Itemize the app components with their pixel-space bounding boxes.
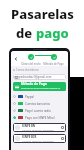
button[interactable]: Back <box>13 56 19 62</box>
staticText: Correo electrónico <box>16 68 39 72</box>
staticText: Pago/ cuenta radio <box>25 109 51 113</box>
button[interactable]: SINPE BN <box>13 123 66 132</box>
button[interactable]: pedrovdiaz1@gmail.com <box>13 74 66 80</box>
button[interactable]: SINPE BCR <box>13 134 66 143</box>
other: Copy <box>61 137 64 140</box>
staticText: Numero Telefono: 88888888 <box>22 139 54 142</box>
staticText: SINPE BN <box>22 124 36 128</box>
staticText: Numero Telefono: 88888888 <box>22 128 54 131</box>
button[interactable]: Método de Pago <box>13 82 66 91</box>
staticText: pago <box>36 24 69 42</box>
button[interactable]: Pago con SINPE Móvil <box>13 114 66 121</box>
staticText: Selecciona cómo quieres realizar el pago <box>21 86 64 91</box>
staticText: Datos del envío <box>21 62 41 66</box>
staticText: Cuentas bancarias <box>25 102 50 106</box>
staticText: Método de Pago <box>21 82 47 86</box>
staticText: Pasarelas <box>11 5 74 23</box>
other: Copy <box>61 126 64 129</box>
staticText: pedrovdiaz1@gmail.com <box>19 75 52 79</box>
staticText: Método de Pago <box>43 62 64 66</box>
button[interactable]: Pago/ cuenta radio <box>13 107 66 114</box>
staticText: Pago con SINPE Móvil <box>25 116 55 120</box>
button[interactable]: Paypal <box>13 93 66 100</box>
staticText: Paypal <box>25 95 34 99</box>
button[interactable]: Cuentas bancarias <box>13 100 66 107</box>
staticText: SINPE BCR <box>22 135 37 139</box>
staticText: de <box>16 24 36 42</box>
